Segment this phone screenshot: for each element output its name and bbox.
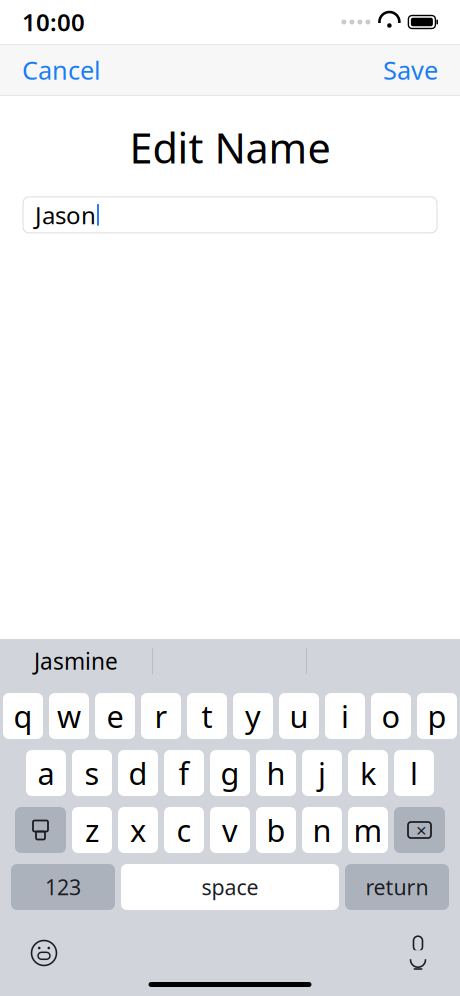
button[interactable]: q [3,693,43,739]
staticText: k [360,753,376,793]
staticText: z [85,810,99,850]
button[interactable]: c [164,807,204,853]
staticText: e [106,696,123,736]
staticText: c [176,810,191,850]
staticText: Save [383,53,438,87]
staticText: g [220,753,239,793]
staticText: Edit Name [129,120,330,175]
staticText: t [201,696,212,736]
staticText: u [289,696,308,736]
staticText: Jason [35,199,96,231]
button[interactable]: n [302,807,342,853]
staticText: 123 [45,873,81,901]
button[interactable]: m [348,807,388,853]
button[interactable]: w [49,693,89,739]
button[interactable]: t [187,693,227,739]
staticText: s [84,753,99,793]
staticText: 10:00 [22,6,85,38]
button[interactable]: space [121,864,339,910]
button[interactable]: Save [383,43,438,97]
button[interactable]: Delete [394,807,445,853]
staticText: o [381,696,400,736]
staticText: a [37,753,54,793]
staticText: p [427,696,446,736]
button[interactable]: k [348,750,388,796]
button[interactable]: p [417,693,457,739]
staticText: y [245,696,261,736]
button[interactable]: Shift [15,807,66,853]
button[interactable]: e [95,693,135,739]
staticText: h [266,753,285,793]
staticText: Jasmine [34,646,118,676]
button[interactable]: h [256,750,296,796]
staticText: return [365,873,428,901]
button[interactable]: return [345,864,449,910]
staticText: j [318,753,326,793]
staticText: b [266,810,285,850]
button[interactable]: r [141,693,181,739]
staticText: w [57,696,81,736]
staticText: × [416,818,427,842]
button[interactable]: j [302,750,342,796]
staticText: d [128,753,147,793]
staticText: r [154,696,167,736]
staticText: n [312,810,331,850]
button[interactable]: y [233,693,273,739]
staticText: l [410,753,418,793]
staticText: m [353,810,382,850]
button[interactable]: o [371,693,411,739]
button[interactable]: Cancel [22,43,101,97]
staticText: Cancel [22,53,101,87]
staticText: f [178,753,189,793]
button[interactable]: s [72,750,112,796]
button[interactable]: b [256,807,296,853]
button[interactable]: d [118,750,158,796]
button[interactable]: i [325,693,365,739]
button[interactable]: l [394,750,434,796]
button[interactable]: u [279,693,319,739]
button[interactable]: g [210,750,250,796]
button[interactable]: z [72,807,112,853]
button[interactable]: a [26,750,66,796]
button[interactable]: x [118,807,158,853]
button[interactable]: Dictation [406,938,460,968]
button[interactable]: v [210,807,250,853]
staticText: q [13,696,32,736]
button[interactable]: Jasmine [0,639,152,683]
staticText: v [222,810,238,850]
staticText: i [341,696,349,736]
button[interactable]: f [164,750,204,796]
button[interactable]: Emoji [0,939,58,967]
button[interactable]: 123 [11,864,115,910]
staticText: space [201,873,258,901]
staticText: x [130,810,146,850]
